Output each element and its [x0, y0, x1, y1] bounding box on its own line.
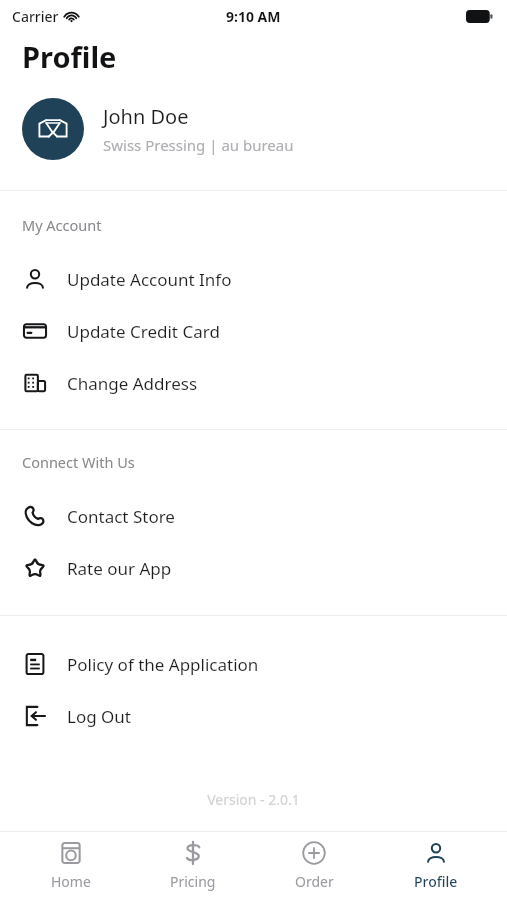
- staticText: Change Address: [67, 372, 198, 395]
- button[interactable]: Rate our App: [0, 542, 507, 594]
- staticText: Profile: [414, 872, 458, 891]
- staticText: Policy of the Application: [67, 653, 259, 676]
- button[interactable]: Profile: [386, 835, 486, 897]
- staticText: Profile: [22, 37, 117, 76]
- button[interactable]: Home: [21, 835, 121, 897]
- staticText: Contact Store: [67, 505, 175, 528]
- staticText: Update Account Info: [67, 268, 232, 291]
- staticText: Home: [51, 872, 91, 891]
- button[interactable]: Pricing: [143, 835, 243, 897]
- button[interactable]: Update Credit Card: [0, 305, 507, 357]
- staticText: 9:10 AM: [226, 7, 281, 26]
- button[interactable]: Log Out: [0, 690, 507, 742]
- button[interactable]: Contact Store: [0, 490, 507, 542]
- button[interactable]: Update Account Info: [0, 253, 507, 305]
- staticText: Carrier: [12, 7, 59, 26]
- staticText: Swiss Pressing | au bureau: [103, 135, 294, 155]
- button[interactable]: Change Address: [0, 357, 507, 409]
- button[interactable]: Policy of the Application: [0, 638, 507, 690]
- staticText: Version - 2.0.1: [0, 790, 507, 809]
- staticText: Log Out: [67, 705, 131, 728]
- button[interactable]: Order: [264, 835, 364, 897]
- staticText: John Doe: [103, 103, 189, 130]
- staticText: Order: [295, 872, 334, 891]
- button[interactable]: John Doe: [0, 94, 507, 164]
- staticText: My Account: [22, 215, 102, 235]
- staticText: Update Credit Card: [67, 320, 220, 343]
- staticText: Pricing: [170, 872, 216, 891]
- staticText: Connect With Us: [22, 452, 135, 472]
- staticText: Rate our App: [67, 557, 172, 580]
